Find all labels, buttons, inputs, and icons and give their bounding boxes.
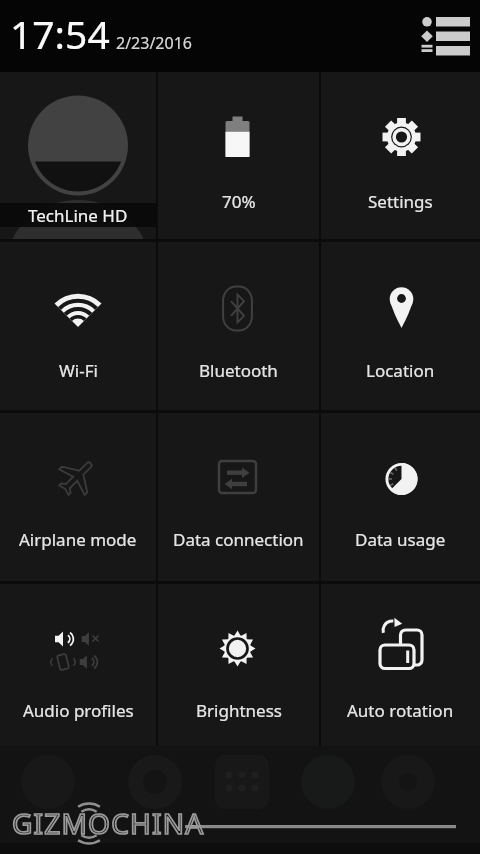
button[interactable]: Wi-Fi <box>0 242 156 410</box>
button[interactable] <box>416 0 480 64</box>
staticText: Settings <box>368 190 433 213</box>
staticText: Wi-Fi <box>59 359 98 382</box>
staticText: GIZMOCHINA <box>12 804 205 842</box>
staticText: Location <box>366 359 435 382</box>
staticText: Brightness <box>196 699 282 722</box>
button[interactable]: Data usage <box>321 413 480 581</box>
staticText: Data connection <box>173 528 304 551</box>
button[interactable]: Audio profiles <box>0 584 156 746</box>
staticText: 17:54 <box>10 7 110 60</box>
button[interactable]: Auto rotation <box>321 584 480 746</box>
button[interactable]: Airplane mode <box>0 413 156 581</box>
staticText: 70% <box>222 190 256 213</box>
staticText: 2/23/2016 <box>116 32 192 54</box>
button[interactable]: 70% <box>158 72 319 239</box>
staticText: Airplane mode <box>19 528 137 551</box>
staticText: Audio profiles <box>23 699 134 722</box>
staticText: Data usage <box>355 528 446 551</box>
button[interactable]: Data connection <box>158 413 319 581</box>
button[interactable]: Bluetooth <box>158 242 319 410</box>
staticText: TechLine HD <box>28 204 128 227</box>
staticText: Bluetooth <box>199 359 278 382</box>
button[interactable]: Brightness <box>158 584 319 746</box>
button[interactable]: GIZMOCHINA <box>0 746 480 854</box>
staticText: Auto rotation <box>347 699 454 722</box>
button[interactable]: Settings <box>321 72 480 239</box>
button[interactable]: TechLine HD <box>0 72 156 239</box>
button[interactable]: Location <box>321 242 480 410</box>
